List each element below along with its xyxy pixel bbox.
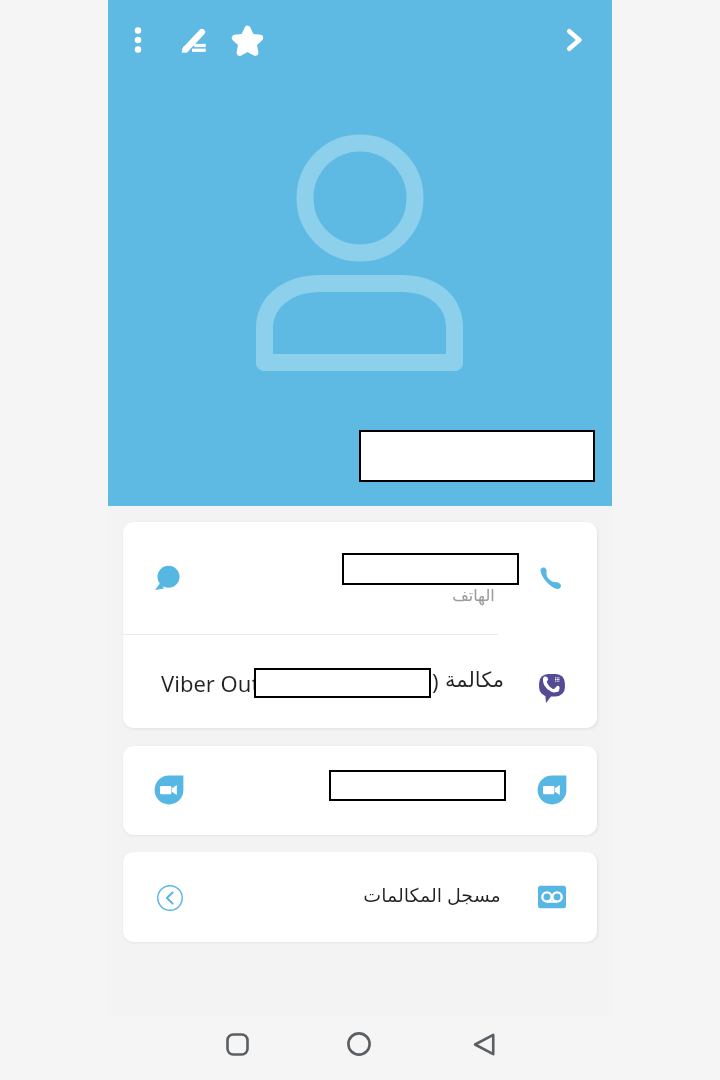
button[interactable]: Expand	[123, 852, 597, 942]
button[interactable]: الهاتف	[123, 522, 597, 634]
button[interactable]: Viber Out	[123, 635, 597, 728]
button[interactable]: Back	[548, 14, 600, 66]
staticText: Viber Out	[161, 668, 260, 698]
button[interactable]: Home	[327, 1012, 391, 1076]
button[interactable]: Edit	[167, 14, 219, 66]
staticText: مسجل المكالمات	[363, 882, 501, 908]
staticText: مكالمة	[445, 668, 505, 692]
button[interactable]	[123, 746, 597, 835]
other: Expand	[156, 884, 183, 911]
staticText: )	[432, 666, 439, 696]
button[interactable]: More options	[112, 14, 164, 66]
staticText: الهاتف	[452, 586, 495, 605]
button[interactable]: Favorite	[221, 14, 273, 66]
button[interactable]: Back	[452, 1012, 516, 1076]
button[interactable]: Recents	[205, 1012, 269, 1076]
